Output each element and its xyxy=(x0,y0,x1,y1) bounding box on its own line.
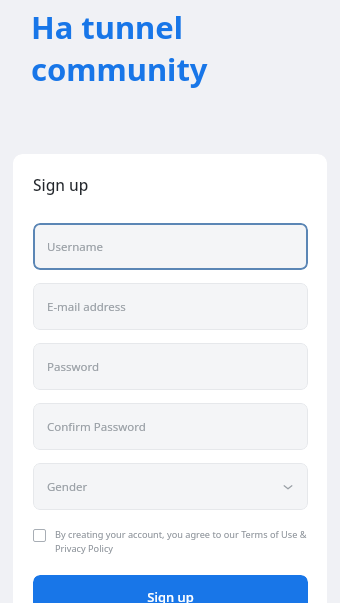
staticText: Sign up xyxy=(147,588,194,603)
staticText: Confirm Password xyxy=(47,419,146,435)
staticText: By creating your account, you agree to o… xyxy=(55,528,308,555)
staticText: community xyxy=(31,48,208,90)
staticText: Password xyxy=(47,359,100,375)
button[interactable]: Gender xyxy=(33,463,308,510)
staticText: Ha tunnel xyxy=(31,6,183,48)
staticText: Sign up xyxy=(33,174,89,195)
button[interactable]: Password xyxy=(33,343,308,390)
button[interactable]: Username xyxy=(33,223,308,270)
button[interactable]: Confirm Password xyxy=(33,403,308,450)
staticText: E-mail address xyxy=(47,299,126,315)
staticText: Gender xyxy=(47,479,88,495)
button[interactable]: Sign up xyxy=(33,575,308,603)
staticText: Username xyxy=(47,239,103,255)
button[interactable]: Accept terms of use and privacy policy xyxy=(33,528,308,555)
button[interactable]: E-mail address xyxy=(33,283,308,330)
